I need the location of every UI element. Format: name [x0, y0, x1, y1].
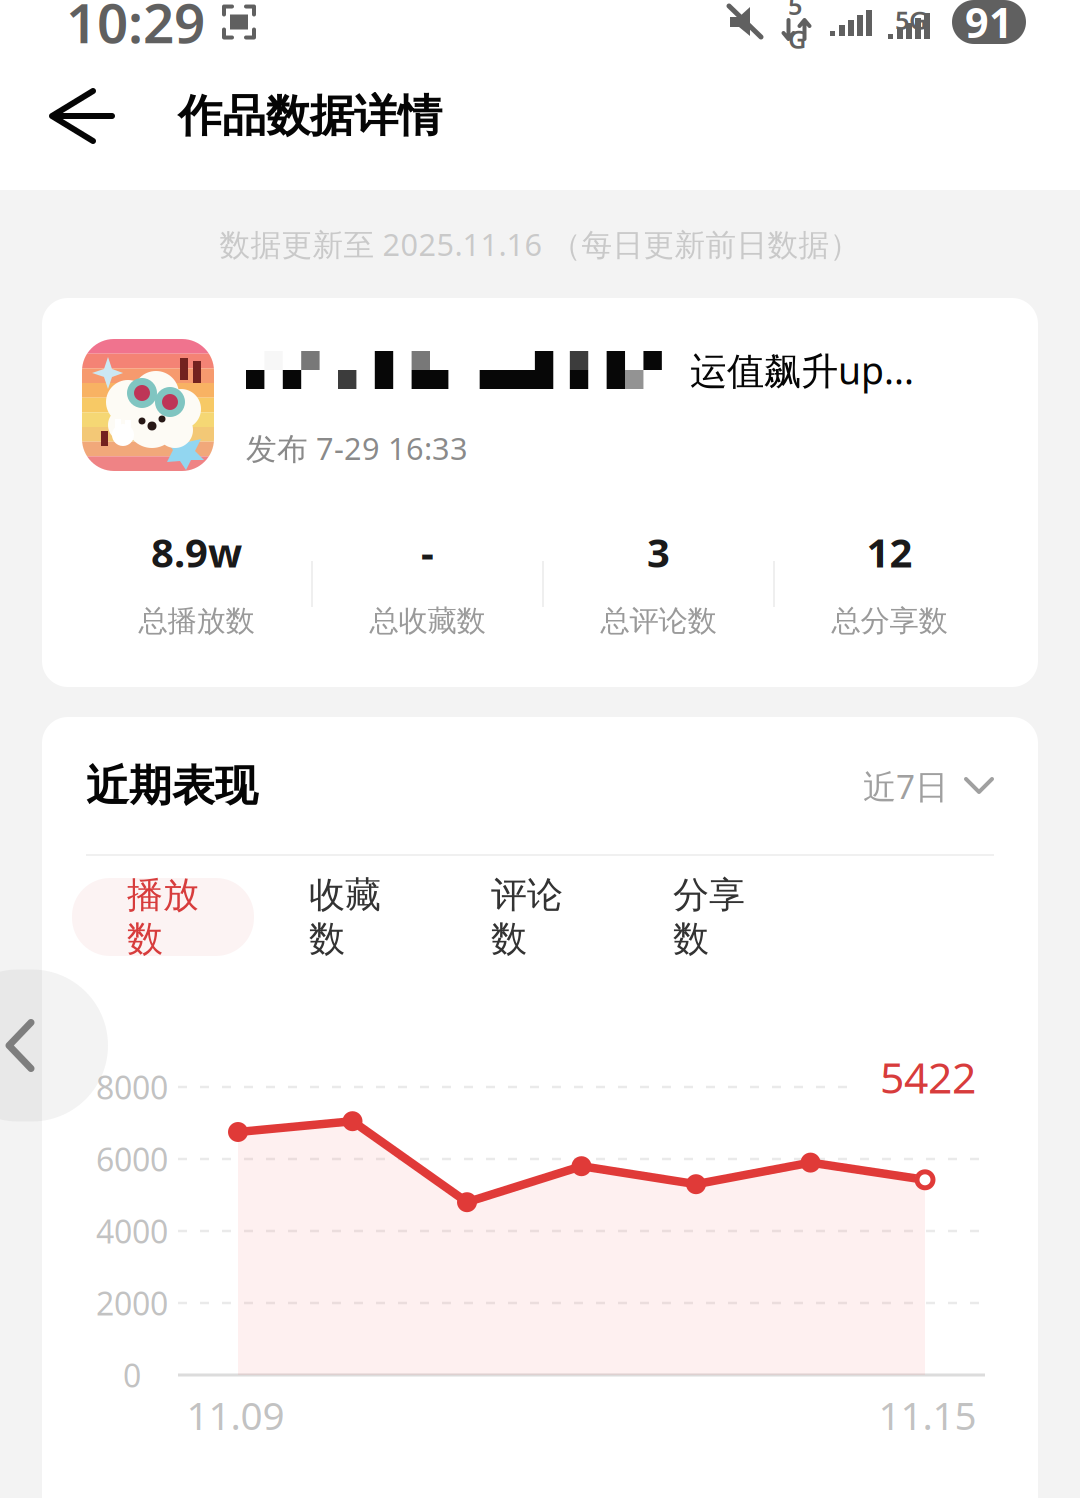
staticText: 总收藏数	[369, 603, 485, 639]
staticText: 4000	[96, 1210, 168, 1252]
staticText: 12	[866, 525, 912, 578]
staticText: 0	[123, 1354, 141, 1396]
staticText: -	[421, 525, 434, 578]
staticText: 10:29	[66, 0, 205, 58]
staticText: 收藏数	[309, 873, 381, 961]
staticText: 5G	[895, 3, 927, 37]
staticText: 发布 7-29 16:33	[246, 428, 468, 468]
staticText: 运值飙升up...	[690, 345, 914, 395]
staticText: 作品数据详情	[178, 89, 442, 143]
staticText: 2000	[96, 1282, 168, 1324]
staticText: 3	[647, 525, 670, 578]
staticText: 总评论数	[600, 603, 716, 639]
button[interactable]: 收藏数	[254, 878, 436, 956]
staticText: 近期表现	[86, 760, 258, 812]
staticText: 11.15	[878, 1389, 976, 1441]
staticText: 播放数	[127, 873, 199, 961]
button[interactable]: Back	[0, 63, 178, 169]
staticText: 数据更新至 2025.11.16 （每日更新前日数据）	[219, 224, 860, 264]
staticText: 分享数	[673, 873, 745, 961]
staticText: 5G	[788, 0, 806, 56]
staticText: 总分享数	[831, 603, 947, 639]
staticText: 5422	[880, 1049, 976, 1105]
staticText: 评论数	[491, 873, 563, 961]
button[interactable]: 分享数	[618, 878, 800, 956]
button[interactable]: 播放数	[72, 878, 254, 956]
staticText: 6000	[96, 1138, 168, 1180]
staticText: 近7日	[863, 764, 948, 808]
staticText: 总播放数	[138, 603, 254, 639]
staticText: 91	[965, 0, 1013, 49]
staticText: 8.9w	[151, 525, 242, 578]
button[interactable]: 评论数	[436, 878, 618, 956]
button[interactable]: 近7日	[863, 764, 994, 808]
staticText: 11.09	[186, 1389, 284, 1441]
staticText: 8000	[96, 1066, 168, 1108]
